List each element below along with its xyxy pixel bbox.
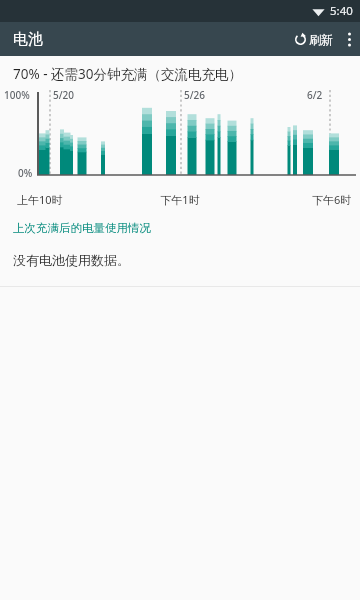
staticText: 下午1时	[160, 192, 200, 207]
staticText: 刷新	[309, 32, 333, 47]
staticText: 6/2	[307, 88, 323, 102]
button[interactable]: More options	[339, 26, 360, 53]
staticText: 100%	[4, 88, 30, 102]
staticText: 5/20	[53, 88, 75, 102]
staticText: 没有电池使用数据。	[13, 252, 130, 268]
staticText: 0%	[18, 166, 33, 180]
staticText: 5:40	[330, 3, 353, 19]
staticText: 电池	[13, 30, 43, 49]
staticText: 上午10时	[17, 192, 63, 207]
staticText: 上次充满后的电量使用情况	[13, 221, 151, 235]
button[interactable]: 上次充满后的电量使用情况	[0, 219, 360, 237]
staticText: 5/26	[184, 88, 206, 102]
staticText: 70% - 还需30分钟充满（交流电充电）	[13, 65, 242, 83]
button[interactable]: 刷新	[288, 27, 339, 52]
staticText: 下午6时	[312, 192, 352, 207]
